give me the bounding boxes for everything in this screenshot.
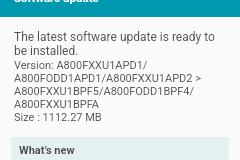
staticText: Software update	[14, 0, 99, 4]
button[interactable]: What’s new	[11, 137, 229, 160]
button[interactable]: Software update	[0, 0, 240, 17]
button[interactable]: Version: A800FXXU1APD1/ A800FODD1APD1/A8…	[14, 59, 240, 124]
staticText: Version: A800FXXU1APD1/ A800FODD1APD1/A8…	[14, 59, 201, 124]
staticText: The latest software update is ready to b…	[14, 30, 215, 58]
staticText: What’s new	[19, 144, 75, 157]
